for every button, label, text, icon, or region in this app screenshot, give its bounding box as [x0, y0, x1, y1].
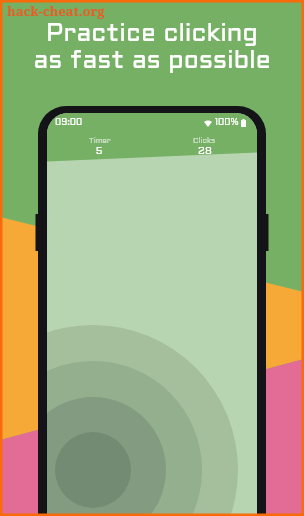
button[interactable]: 09:00	[47, 113, 257, 516]
staticText: hack-cheat.org	[7, 2, 105, 20]
staticText: Timer	[89, 138, 111, 145]
staticText: Clicks	[193, 138, 216, 145]
staticText: 100%	[215, 119, 239, 127]
staticText: 5	[96, 147, 103, 156]
staticText: 28	[198, 147, 212, 156]
staticText: Practice clicking	[46, 23, 258, 46]
staticText: 09:00	[55, 119, 83, 127]
staticText: as fast as possible	[33, 50, 271, 73]
